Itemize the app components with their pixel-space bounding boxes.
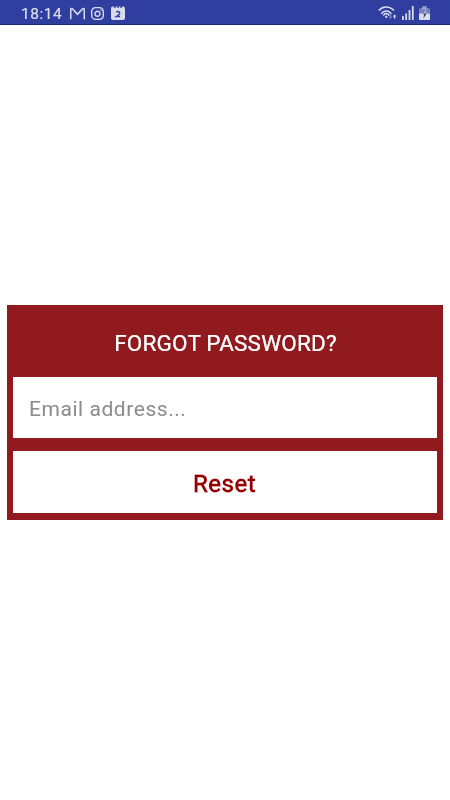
staticText: Reset — [193, 470, 257, 498]
button[interactable]: Email address... — [13, 377, 437, 438]
button[interactable]: Reset — [13, 451, 437, 513]
staticText: Email address... — [29, 397, 187, 422]
staticText: 18:14 — [21, 5, 63, 23]
staticText: FORGOT PASSWORD? — [114, 330, 337, 356]
